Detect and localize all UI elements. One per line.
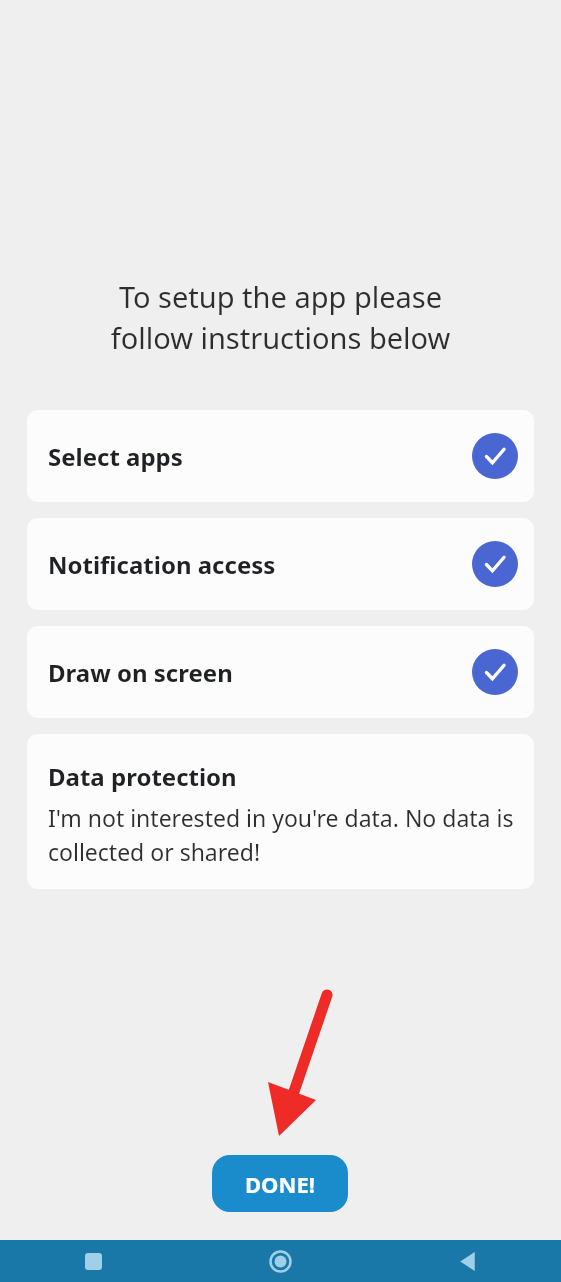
staticText: I'm not interested in you're data. No da…	[48, 802, 516, 867]
button[interactable]: Home	[187, 1250, 374, 1273]
button[interactable]: Select apps	[27, 410, 534, 502]
staticText: DONE!	[245, 1169, 315, 1199]
staticText: Data protection	[48, 760, 237, 793]
staticText: To setup the app please follow instructi…	[24, 277, 537, 358]
other: Completed	[472, 649, 518, 695]
other: Completed	[472, 541, 518, 587]
button[interactable]: DONE!	[212, 1155, 348, 1212]
staticText: Select apps	[48, 440, 183, 473]
staticText: Draw on screen	[48, 656, 233, 689]
button[interactable]: Data protection	[27, 734, 534, 889]
button[interactable]: Notification access	[27, 518, 534, 610]
staticText: Notification access	[48, 548, 276, 581]
button[interactable]: Recent apps	[0, 1253, 187, 1270]
button[interactable]: Back	[374, 1252, 561, 1271]
other: Completed	[472, 433, 518, 479]
button[interactable]: Draw on screen	[27, 626, 534, 718]
